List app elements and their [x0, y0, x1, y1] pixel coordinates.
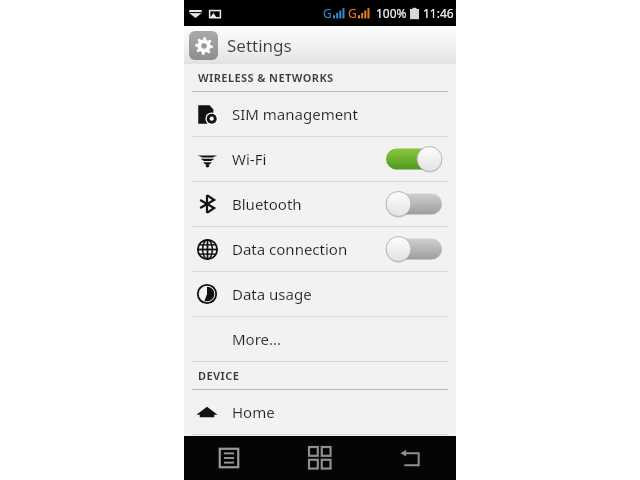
staticText: WIRELESS & NETWORKS: [198, 70, 334, 85]
staticText: G: [348, 5, 357, 21]
button[interactable]: Data connection: [184, 227, 456, 272]
staticText: SIM management: [232, 104, 442, 124]
staticText: G: [323, 5, 332, 21]
button[interactable]: Wi-Fi: [184, 137, 456, 182]
button[interactable]: On: [386, 146, 442, 172]
button[interactable]: Off: [386, 236, 442, 262]
staticText: More...: [232, 329, 442, 349]
staticText: 11:46: [423, 5, 454, 21]
button[interactable]: Bluetooth: [184, 182, 456, 227]
button[interactable]: More...: [184, 317, 456, 362]
button[interactable]: Back: [365, 436, 456, 480]
button[interactable]: Off: [386, 191, 442, 217]
button[interactable]: SIM management: [184, 92, 456, 137]
button[interactable]: Menu: [184, 436, 274, 480]
staticText: Bluetooth: [232, 194, 386, 214]
button[interactable]: Data usage: [184, 272, 456, 317]
button[interactable]: Recent apps: [274, 436, 365, 480]
staticText: Home: [232, 402, 442, 422]
staticText: Data connection: [232, 239, 386, 259]
staticText: 100%: [376, 5, 407, 21]
staticText: Settings: [227, 34, 292, 57]
button[interactable]: Home: [184, 390, 456, 435]
staticText: DEVICE: [198, 368, 240, 383]
staticText: Wi-Fi: [232, 149, 386, 169]
staticText: Data usage: [232, 284, 442, 304]
